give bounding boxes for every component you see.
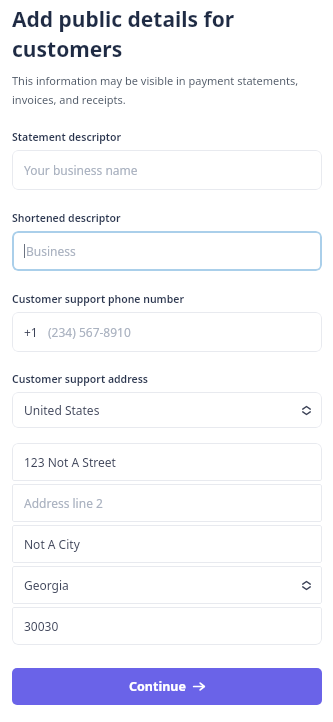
button[interactable]: Continue (12, 668, 322, 705)
other: Open selector (301, 403, 312, 418)
staticText: 30030 (24, 618, 59, 634)
staticText: Not A City (24, 536, 80, 552)
other: Open selector (301, 578, 312, 593)
staticText: United States (24, 402, 100, 418)
staticText: Georgia (24, 577, 69, 593)
button[interactable]: Business (12, 231, 322, 271)
button[interactable]: Address line 2 (12, 484, 322, 522)
button[interactable]: Not A City (12, 525, 322, 563)
staticText: Statement descriptor (12, 130, 321, 144)
staticText: +1 (24, 324, 38, 340)
staticText: Customer support phone number (12, 292, 321, 306)
button[interactable]: +1 (12, 312, 322, 352)
staticText: (234) 567-8910 (48, 324, 131, 340)
staticText: Add public details for customers (12, 5, 319, 63)
staticText: This information may be visible in payme… (12, 73, 325, 107)
staticText: 123 Not A Street (24, 454, 116, 470)
staticText: Customer support address (12, 372, 321, 386)
button[interactable]: Your business name (12, 150, 322, 190)
staticText: Shortened descriptor (12, 211, 321, 225)
staticText: Address line 2 (24, 495, 103, 511)
staticText: Your business name (24, 162, 138, 178)
button[interactable]: 30030 (12, 607, 322, 645)
staticText: Continue (129, 678, 186, 695)
button[interactable]: United States (12, 392, 322, 428)
staticText: Business (26, 243, 76, 259)
button[interactable]: Georgia (12, 566, 322, 604)
button[interactable]: 123 Not A Street (12, 443, 322, 481)
